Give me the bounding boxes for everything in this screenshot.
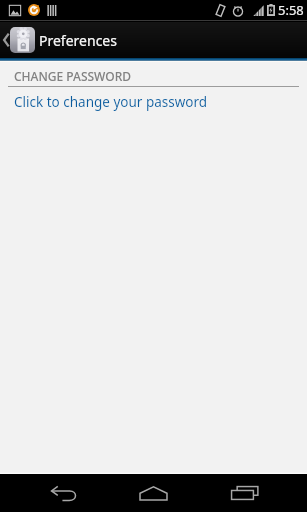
button[interactable]: Recent apps — [219, 474, 271, 512]
button[interactable]: Home — [128, 474, 179, 512]
button[interactable]: Navigate up — [0, 22, 39, 58]
button[interactable]: Back — [38, 474, 90, 512]
staticText: Click to change your password — [14, 93, 208, 111]
staticText: CHANGE PASSWORD — [14, 68, 132, 84]
button[interactable]: Click to change your password — [0, 87, 307, 116]
staticText: Preferences — [39, 31, 117, 50]
staticText: 5:58 — [278, 1, 304, 19]
